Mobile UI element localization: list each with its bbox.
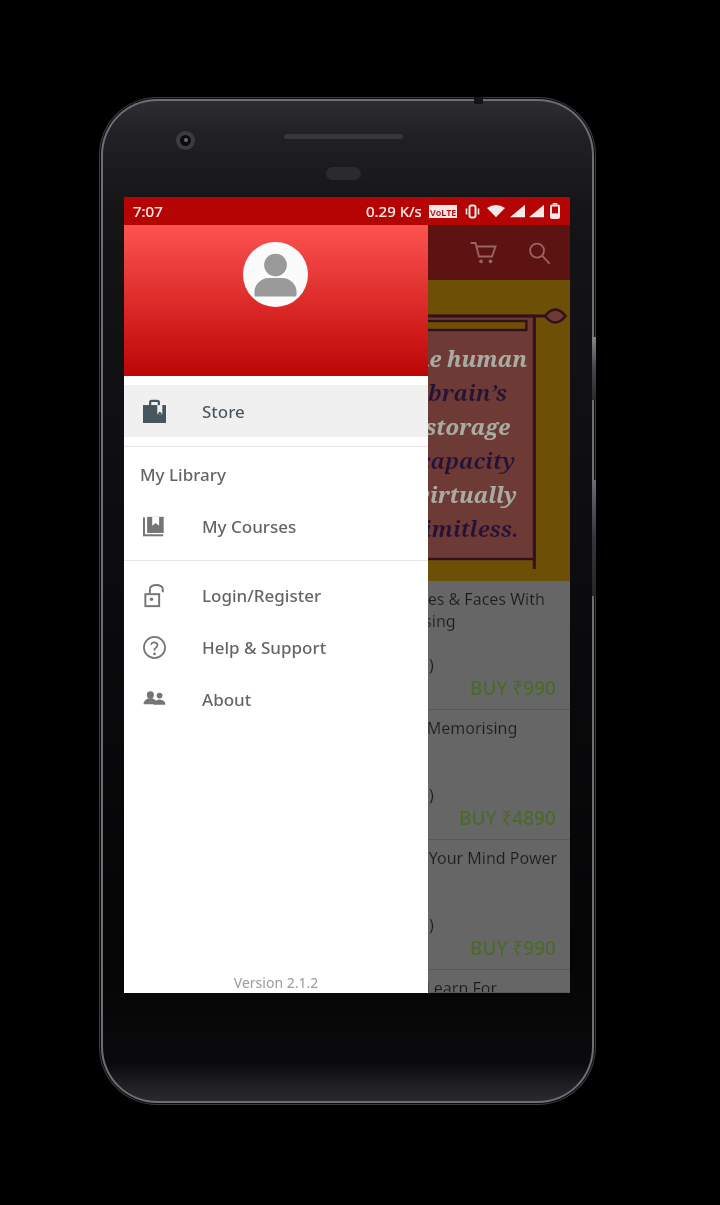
staticText: My Library	[140, 463, 226, 486]
staticText: the human	[406, 343, 528, 373]
staticText: Complete Art of Memorising	[304, 717, 518, 739]
staticText: capacity	[419, 445, 516, 475]
staticText: 0.29 K/s	[366, 201, 422, 221]
staticText: brain’s	[428, 377, 507, 407]
staticText: How to Improve Your Mind Power	[304, 847, 558, 869]
button[interactable]: Close navigation drawer	[124, 197, 570, 993]
staticText: BUY ₹4890	[459, 805, 556, 831]
button[interactable]: About	[124, 673, 428, 725]
staticText: (0)	[415, 654, 434, 676]
staticText: Remember Names & Faces With	[304, 588, 545, 610]
staticText: storage	[425, 411, 510, 441]
staticText: Store	[202, 400, 245, 423]
button[interactable]: Menu	[124, 225, 179, 280]
staticText: Amazing Ease Using	[304, 610, 456, 632]
staticText: (0)	[415, 914, 434, 936]
staticText: Help & Support	[202, 636, 327, 659]
staticText: Memory Tips to Learn For	[304, 977, 498, 993]
staticText: limitless.	[416, 513, 519, 543]
button[interactable]: My Courses	[124, 500, 428, 552]
button[interactable]: Memory Tips to Learn For	[124, 970, 570, 993]
staticText: About	[202, 688, 252, 711]
button[interactable]: Store	[124, 385, 428, 437]
staticText: VoLTE	[430, 206, 457, 218]
button[interactable]: Login/Register	[124, 569, 428, 621]
button[interactable]: Search	[511, 225, 566, 280]
button[interactable]: Complete Art of Memorising	[124, 710, 570, 840]
button[interactable]: Remember Names & Faces With	[124, 581, 570, 710]
staticText: My Courses	[202, 515, 297, 538]
button[interactable]: Cart	[456, 225, 511, 280]
staticText: Version 2.1.2	[124, 973, 428, 992]
button[interactable]: How to Improve Your Mind Power	[124, 840, 570, 970]
staticText: 7:07	[133, 201, 163, 221]
staticText: BUY ₹990	[470, 675, 556, 701]
staticText: virtually	[417, 479, 517, 509]
button[interactable]: Help & Support	[124, 621, 428, 673]
staticText: Login/Register	[202, 584, 322, 607]
staticText: BUY ₹990	[470, 935, 556, 961]
staticText: (0)	[415, 784, 434, 806]
